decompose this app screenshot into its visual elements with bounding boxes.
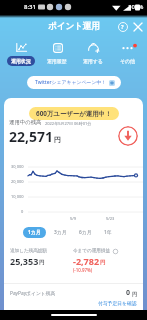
button[interactable]: 運用履歴 bbox=[41, 42, 73, 66]
button[interactable]: Close bbox=[130, 19, 145, 34]
staticText: その他 bbox=[120, 58, 135, 64]
staticText: 円 bbox=[132, 291, 137, 297]
staticText: 100% bbox=[128, 3, 144, 11]
staticText: PayPayポイント残高 bbox=[10, 290, 56, 297]
staticText: -2,782 bbox=[73, 255, 100, 267]
staticText: 円 bbox=[100, 259, 106, 266]
button[interactable]: 3カ月 bbox=[50, 227, 71, 238]
staticText: 運用履歴 bbox=[47, 58, 67, 64]
button[interactable]: 1年 bbox=[100, 227, 116, 238]
staticText: 25,353 bbox=[10, 255, 39, 267]
staticText: 30,000 bbox=[11, 164, 24, 169]
staticText: 運用状況 bbox=[11, 58, 31, 64]
button[interactable]: Help bbox=[115, 19, 130, 34]
staticText: 22,571 bbox=[9, 127, 54, 146]
staticText: 円 bbox=[39, 259, 45, 266]
staticText: ? bbox=[121, 23, 124, 30]
staticText: 1年 bbox=[104, 229, 112, 236]
staticText: 1カ月 bbox=[28, 229, 41, 236]
staticText: Twitterシェアキャンペーン中！ bbox=[35, 79, 107, 86]
staticText: 円 bbox=[54, 135, 61, 144]
staticText: 今までの運用損益 bbox=[73, 248, 111, 254]
staticText: 運用中の残高 bbox=[9, 119, 42, 126]
staticText: 追加した残高総額 bbox=[10, 248, 47, 254]
button[interactable]: 引き出す bbox=[118, 126, 138, 146]
button[interactable]: 運用する bbox=[77, 42, 109, 66]
button[interactable]: その他 bbox=[114, 42, 141, 66]
staticText: 20,000 bbox=[11, 179, 24, 184]
button[interactable]: 6カ月 bbox=[75, 227, 96, 238]
staticText: ポイント運用 bbox=[48, 21, 100, 32]
staticText: 付与予定日を確認 bbox=[98, 300, 137, 306]
staticText: 0 bbox=[126, 288, 131, 298]
staticText: 6カ月 bbox=[79, 229, 92, 236]
staticText: 10,000 bbox=[11, 194, 24, 199]
staticText: 5/9 bbox=[70, 216, 77, 221]
button[interactable]: 1カ月 bbox=[23, 227, 46, 238]
staticText: 5/23 bbox=[106, 216, 115, 221]
button[interactable]: PayPayポイント残高 bbox=[4, 287, 143, 306]
button[interactable]: 運用状況 bbox=[6, 42, 36, 66]
staticText: (-10.97%) bbox=[73, 267, 93, 273]
button[interactable]: Twitterシェアキャンペーン中！ bbox=[27, 76, 121, 89]
staticText: 8:31 bbox=[24, 3, 36, 11]
staticText: 運用する bbox=[83, 58, 103, 64]
staticText: 0 bbox=[21, 209, 24, 214]
staticText: 600万ユーザーが運用中！ bbox=[36, 109, 112, 118]
staticText: 3カ月 bbox=[54, 229, 67, 236]
staticText: 2022年5月27日 06時01分 bbox=[45, 121, 92, 126]
